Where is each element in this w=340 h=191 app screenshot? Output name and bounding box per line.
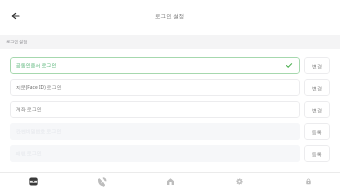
staticText: 계좌 로그인	[16, 106, 42, 113]
button[interactable]: Lock	[286, 172, 330, 191]
button[interactable]: 변경	[304, 57, 330, 74]
staticText: 공동인증서 로그인	[16, 62, 57, 69]
button[interactable]: 지문(Face ID) 로그인	[10, 79, 300, 96]
staticText: 등록	[312, 151, 322, 157]
staticText: 변경	[312, 63, 322, 69]
button[interactable]: 변경	[304, 101, 330, 118]
staticText: 변경	[312, 107, 322, 113]
button[interactable]: Settings	[217, 172, 261, 191]
staticText: 패턴 로그인	[16, 150, 42, 157]
staticText: 변경	[312, 85, 322, 91]
button[interactable]: 등록	[304, 123, 330, 140]
staticText: 등록	[312, 129, 322, 135]
staticText: 로그인 설정	[6, 39, 28, 45]
button[interactable]: Home	[148, 172, 192, 191]
button[interactable]: Back	[5, 6, 25, 26]
staticText: 지문(Face ID) 로그인	[16, 84, 62, 91]
button[interactable]: Call	[80, 172, 124, 191]
staticText: 로그인 설정	[155, 12, 185, 20]
button[interactable]: 등록	[304, 145, 330, 162]
button[interactable]: Menu	[11, 172, 55, 191]
button[interactable]: 계좌 로그인	[10, 101, 300, 118]
staticText: 간편비밀번호 로그인	[16, 128, 62, 135]
button[interactable]: 공동인증서 로그인	[10, 57, 300, 74]
button[interactable]: 변경	[304, 79, 330, 96]
